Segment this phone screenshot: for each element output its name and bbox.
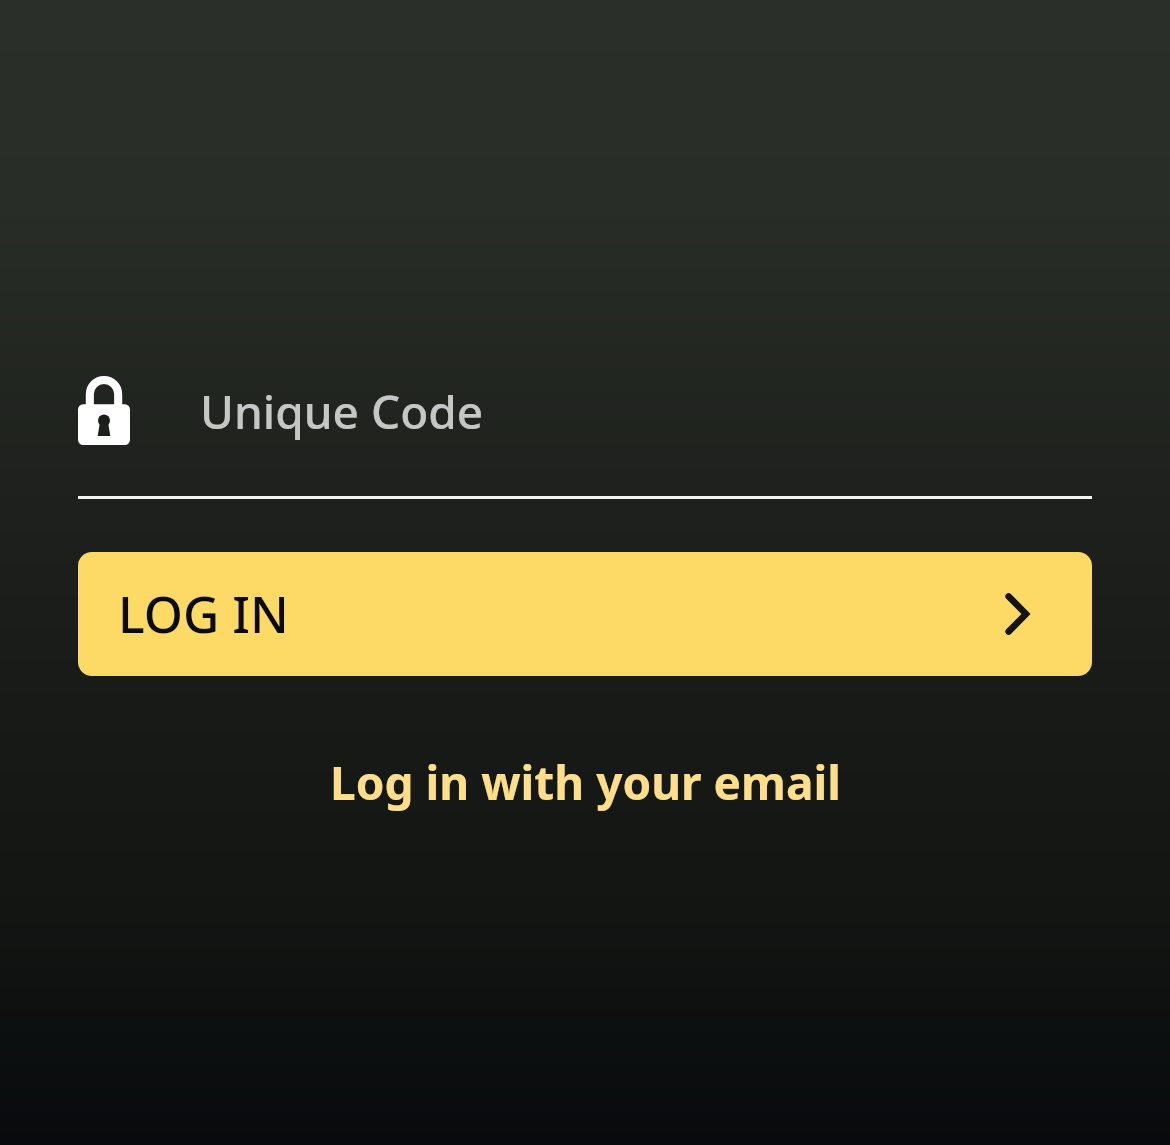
button[interactable]: Log in with your email: [0, 742, 1170, 822]
staticText: Unique Code: [200, 380, 484, 443]
button[interactable]: LOG IN: [78, 552, 1092, 676]
staticText: Log in with your email: [330, 751, 841, 814]
other: Locked: [78, 377, 130, 445]
staticText: LOG IN: [118, 580, 289, 648]
